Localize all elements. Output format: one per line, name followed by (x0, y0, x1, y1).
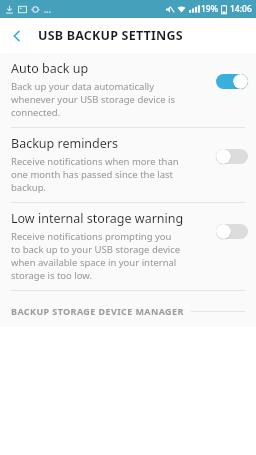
staticText: 14:06 (230, 3, 252, 15)
button[interactable]: Backup reminders (0, 128, 256, 202)
staticText: to back up to your USB storage device (11, 243, 181, 256)
staticText: whenever your USB storage device is (11, 93, 176, 106)
staticText: BACKUP STORAGE DEVICE MANAGER (11, 305, 184, 317)
button[interactable]: Backup reminders off (216, 149, 248, 164)
staticText: ... (44, 4, 51, 15)
staticText: Backup reminders (11, 135, 118, 152)
staticText: when available space in your internal (11, 256, 177, 269)
button[interactable]: Low internal storage warning (0, 203, 256, 290)
staticText: connected. (11, 106, 61, 119)
staticText: USB BACKUP SETTINGS (38, 27, 183, 44)
staticText: backup. (11, 181, 47, 194)
staticText: 19% (201, 3, 218, 15)
staticText: Auto back up (11, 60, 89, 77)
button[interactable]: Auto back up on (216, 74, 248, 89)
button[interactable]: Navigate up (0, 19, 34, 53)
staticText: one month has passed since the last (11, 168, 174, 181)
staticText: Receive notifications prompting you (11, 230, 172, 243)
staticText: Back up your data automatically (11, 80, 155, 93)
staticText: Receive notifications when more than (11, 155, 179, 168)
button[interactable]: Auto back up (0, 53, 256, 127)
staticText: Low internal storage warning (11, 210, 184, 227)
staticText: storage is too low. (11, 269, 92, 282)
button[interactable]: Low internal storage warning off (216, 224, 248, 239)
